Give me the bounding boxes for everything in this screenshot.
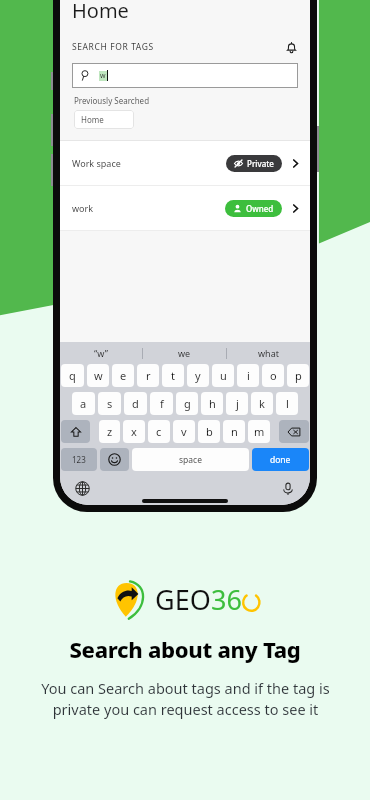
staticText: space <box>179 454 202 466</box>
staticText: Private <box>247 158 274 169</box>
button[interactable]: a <box>72 392 95 415</box>
staticText: d <box>132 396 139 411</box>
staticText: what <box>258 347 279 359</box>
staticText: Search about any Tag <box>69 634 301 664</box>
staticText: Owned <box>246 203 274 214</box>
button[interactable]: Owned <box>225 200 282 217</box>
button[interactable]: Change keyboard <box>74 480 91 497</box>
button[interactable]: w <box>72 63 298 88</box>
staticText: j <box>236 396 239 411</box>
staticText: “w” <box>94 347 108 359</box>
staticText: done <box>270 454 291 466</box>
staticText: h <box>209 396 216 411</box>
button[interactable]: Emoji <box>100 448 129 471</box>
button[interactable]: x <box>123 420 145 443</box>
button[interactable]: space <box>132 448 249 471</box>
staticText: k <box>259 396 265 411</box>
staticText: Home <box>72 0 129 24</box>
button[interactable]: Home <box>74 110 134 129</box>
staticText: e <box>120 368 127 383</box>
button[interactable]: h <box>201 392 223 415</box>
button[interactable]: work <box>60 186 310 230</box>
staticText: we <box>178 347 191 359</box>
staticText: i <box>247 368 250 383</box>
staticText: z <box>107 424 113 439</box>
staticText: Work space <box>72 157 121 169</box>
button[interactable]: n <box>223 420 245 443</box>
staticText: y <box>195 368 201 383</box>
staticText: w <box>100 71 106 81</box>
button[interactable]: r <box>137 364 159 387</box>
button[interactable]: e <box>112 364 134 387</box>
staticText: n <box>231 424 238 439</box>
button[interactable]: s <box>98 392 121 415</box>
staticText: Previously Searched <box>74 95 150 106</box>
button[interactable]: f <box>150 392 173 415</box>
button[interactable]: we <box>143 342 226 364</box>
button[interactable]: v <box>173 420 195 443</box>
staticText: 36 <box>211 581 242 618</box>
button[interactable]: o <box>262 364 284 387</box>
button[interactable]: i <box>237 364 259 387</box>
button[interactable]: y <box>187 364 209 387</box>
staticText: l <box>286 396 289 411</box>
staticText: g <box>184 396 191 411</box>
staticText: q <box>69 368 76 383</box>
button[interactable]: 123 <box>61 448 97 471</box>
staticText: work <box>72 202 94 214</box>
button[interactable]: Shift <box>61 420 90 443</box>
staticText: c <box>156 424 162 439</box>
button[interactable]: l <box>276 392 298 415</box>
button[interactable]: j <box>226 392 248 415</box>
button[interactable]: d <box>124 392 147 415</box>
button[interactable]: p <box>287 364 309 387</box>
staticText: r <box>146 368 151 383</box>
staticText: Home <box>81 114 104 125</box>
button[interactable]: w <box>87 364 109 387</box>
button[interactable]: g <box>176 392 198 415</box>
button[interactable]: what <box>227 342 310 364</box>
button[interactable]: q <box>61 364 84 387</box>
button[interactable]: z <box>99 420 120 443</box>
staticText: x <box>131 424 137 439</box>
button[interactable]: done <box>252 448 309 471</box>
button[interactable]: u <box>212 364 234 387</box>
staticText: v <box>181 424 187 439</box>
button[interactable]: Backspace <box>279 420 309 443</box>
staticText: s <box>107 396 113 411</box>
staticText: f <box>160 396 164 411</box>
button[interactable]: m <box>248 420 270 443</box>
staticText: o <box>270 368 277 383</box>
staticText: m <box>254 424 265 439</box>
staticText: 123 <box>72 454 86 465</box>
staticText: t <box>171 368 175 383</box>
button[interactable]: Notifications <box>282 38 300 56</box>
staticText: w <box>94 368 103 383</box>
staticText: a <box>80 396 87 411</box>
staticText: p <box>295 368 302 383</box>
staticText: GEO <box>155 581 211 618</box>
staticText: You can Search about tags and if the tag… <box>41 678 330 720</box>
staticText: b <box>206 424 213 439</box>
button[interactable]: “w” <box>60 342 142 364</box>
button[interactable]: k <box>251 392 273 415</box>
staticText: u <box>220 368 227 383</box>
button[interactable]: Dictation <box>279 480 296 497</box>
button[interactable]: t <box>162 364 184 387</box>
staticText: SEARCH FOR TAGS <box>72 41 154 53</box>
button[interactable]: b <box>198 420 220 443</box>
button[interactable]: Private <box>226 155 282 172</box>
button[interactable]: Work space <box>60 141 310 185</box>
button[interactable]: c <box>148 420 170 443</box>
